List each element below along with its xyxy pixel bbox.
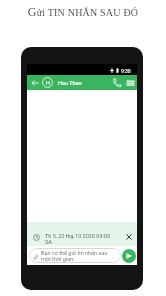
button[interactable]: Menu <box>123 75 137 90</box>
staticText: Gửi TIN NHẮN SAU ĐÓ <box>0 5 166 18</box>
staticText: H <box>46 80 50 86</box>
staticText: 9:30 <box>121 68 131 74</box>
button[interactable]: Bạn có thể gửi tin nhắn sau một thời gia… <box>29 248 121 263</box>
button[interactable]: Send <box>122 249 136 263</box>
staticText: Bạn có thể gửi tin nhắn sau một thời gia… <box>41 250 112 262</box>
button[interactable]: Back <box>27 75 42 90</box>
button[interactable]: Call <box>109 75 123 90</box>
staticText: Th 5, 22 thg 10 2020 09:00 SA <box>45 233 123 245</box>
staticText: Hau Thao <box>58 80 82 86</box>
button[interactable]: Dismiss <box>123 231 135 243</box>
